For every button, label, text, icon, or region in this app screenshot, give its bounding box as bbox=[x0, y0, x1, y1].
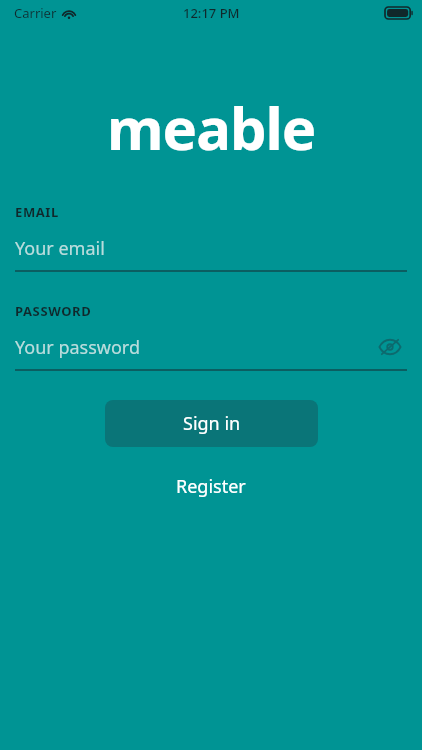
staticText: Your password bbox=[15, 335, 141, 360]
staticText: Your email bbox=[15, 236, 105, 261]
staticText: Sign in bbox=[183, 411, 241, 436]
button[interactable]: Register bbox=[158, 468, 264, 505]
button[interactable]: Sign in bbox=[105, 400, 318, 447]
staticText: PASSWORD bbox=[15, 302, 92, 320]
button[interactable]: Your password bbox=[15, 330, 407, 364]
button[interactable]: Your email bbox=[15, 231, 407, 265]
staticText: EMAIL bbox=[15, 203, 59, 221]
staticText: Carrier bbox=[14, 4, 57, 22]
button[interactable]: Show password bbox=[373, 330, 407, 364]
staticText: Register bbox=[176, 474, 246, 499]
staticText: meable bbox=[107, 88, 316, 160]
staticText: 12:17 PM bbox=[183, 4, 240, 22]
